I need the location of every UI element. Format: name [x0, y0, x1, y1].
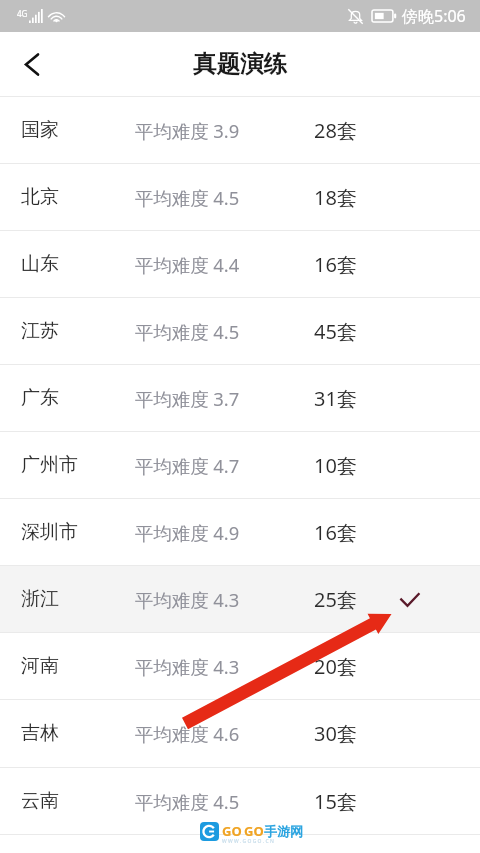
staticText: W W W . G O G O . C N — [222, 838, 274, 845]
staticText: 30套 — [314, 720, 357, 747]
staticText: 4G — [17, 8, 28, 19]
button[interactable]: 北京 — [0, 164, 480, 230]
button[interactable]: 河南 — [0, 633, 480, 699]
staticText: 北京 — [21, 185, 59, 209]
staticText: 平均难度 4.3 — [135, 587, 240, 612]
staticText: 10套 — [314, 452, 357, 479]
staticText: 20套 — [314, 653, 357, 680]
staticText: 河南 — [21, 654, 59, 678]
staticText: 平均难度 4.5 — [135, 185, 240, 210]
staticText: 深圳市 — [21, 520, 78, 544]
staticText: 手游网 — [264, 823, 303, 839]
staticText: 平均难度 4.3 — [135, 654, 240, 679]
staticText: 25套 — [314, 586, 357, 613]
button[interactable]: 国家 — [0, 97, 480, 163]
button[interactable]: 广州市 — [0, 432, 480, 498]
staticText: GO — [222, 822, 242, 840]
staticText: 国家 — [21, 118, 59, 142]
staticText: 江苏 — [21, 319, 59, 343]
button[interactable]: 江苏 — [0, 298, 480, 364]
staticText: 平均难度 4.7 — [135, 453, 240, 478]
staticText: 45套 — [314, 318, 357, 345]
staticText: 平均难度 4.9 — [135, 520, 240, 545]
button[interactable]: 云南 — [0, 768, 480, 834]
staticText: GO — [244, 822, 264, 840]
button[interactable]: 浙江 — [0, 566, 480, 632]
button[interactable]: 吉林 — [0, 700, 480, 766]
staticText: 浙江 — [21, 587, 59, 611]
staticText: 16套 — [314, 251, 357, 278]
staticText: 山东 — [21, 252, 59, 276]
staticText: 平均难度 3.7 — [135, 386, 240, 411]
staticText: 广东 — [21, 386, 59, 410]
staticText: 广州市 — [21, 453, 78, 477]
staticText: 28套 — [314, 117, 357, 144]
staticText: 平均难度 4.6 — [135, 721, 240, 746]
staticText: 平均难度 4.5 — [135, 789, 240, 814]
staticText: 平均难度 4.4 — [135, 252, 240, 277]
staticText: 平均难度 3.9 — [135, 118, 240, 143]
button[interactable]: 山东 — [0, 231, 480, 297]
button[interactable]: 广东 — [0, 365, 480, 431]
staticText: 31套 — [314, 385, 357, 412]
staticText: 18套 — [314, 184, 357, 211]
staticText: 平均难度 4.5 — [135, 319, 240, 344]
button[interactable]: Back — [0, 33, 62, 95]
staticText: 傍晚5:06 — [402, 5, 466, 27]
button[interactable]: 深圳市 — [0, 499, 480, 565]
staticText: 真题演练 — [193, 49, 287, 79]
staticText: 吉林 — [21, 721, 59, 745]
staticText: 云南 — [21, 789, 59, 813]
staticText: 16套 — [314, 519, 357, 546]
staticText: 15套 — [314, 788, 357, 815]
